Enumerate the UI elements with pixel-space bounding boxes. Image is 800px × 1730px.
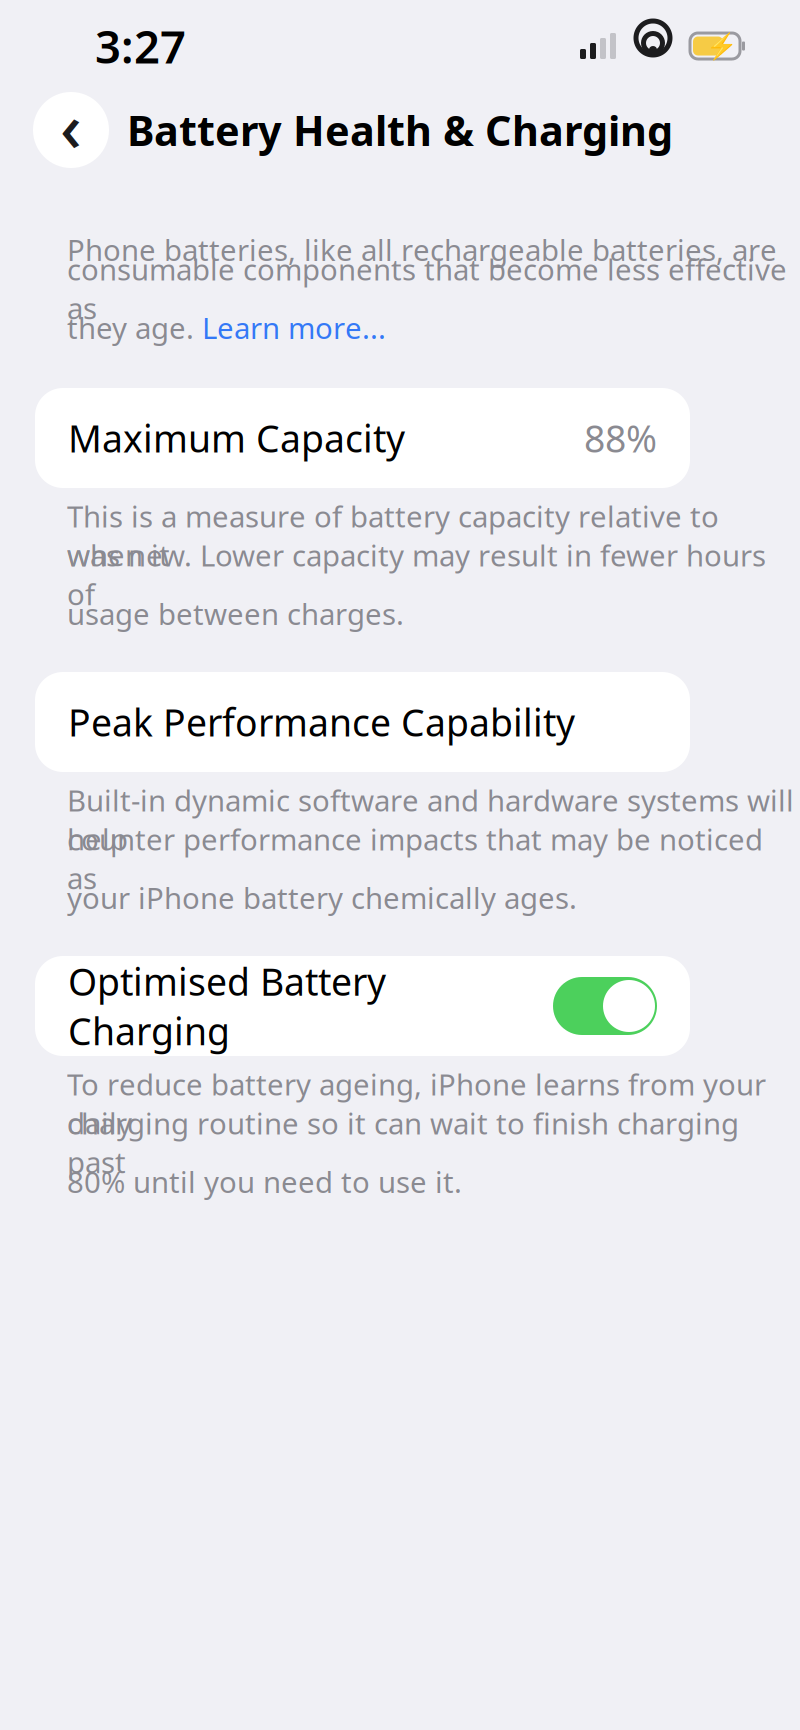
staticText: This is a measure of battery capacity re… (67, 496, 719, 574)
staticText: 88% (584, 413, 657, 463)
staticText: ⚡ (706, 31, 738, 60)
staticText: Maximum Capacity (68, 413, 405, 463)
staticText: charging routine so it can wait to finis… (67, 1103, 739, 1181)
staticText: 3:27 (95, 16, 186, 76)
staticText: consumable components that become less e… (67, 249, 787, 327)
staticText: Optimised Battery Charging (68, 956, 386, 1056)
button[interactable]: Maximum Capacity (35, 388, 690, 488)
staticText: To reduce battery ageing, iPhone learns … (67, 1064, 766, 1142)
staticText: your iPhone battery chemically ages. (67, 878, 577, 917)
staticText: usage between charges. (67, 594, 404, 633)
staticText: counter performance impacts that may be … (67, 819, 763, 897)
button[interactable]: Optimised Battery Charging (35, 956, 690, 1056)
staticText: 80% until you need to use it. (67, 1162, 462, 1201)
staticText: was new. Lower capacity may result in fe… (67, 535, 766, 613)
staticText: Built-in dynamic software and hardware s… (67, 780, 794, 858)
button[interactable]: Back (33, 92, 109, 168)
button[interactable]: Peak Performance Capability (35, 672, 690, 772)
staticText: Peak Performance Capability (68, 697, 575, 747)
staticText: Battery Health & Charging (127, 103, 673, 157)
staticText: Learn more... (202, 308, 386, 347)
button[interactable]: Learn more... (202, 308, 386, 347)
staticText: ‹ (60, 82, 82, 170)
staticText: they age. (67, 308, 202, 347)
staticText: Phone batteries, like all rechargeable b… (67, 230, 777, 269)
